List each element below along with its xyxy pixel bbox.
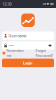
staticText: Remember me <box>6 48 23 58</box>
button[interactable]: Remember me <box>3 48 23 58</box>
staticText: 12:30 <box>2 1 11 7</box>
staticText: Login <box>23 60 33 66</box>
staticText: Username <box>8 33 26 38</box>
staticText: ••••• <box>8 43 13 48</box>
staticText: Forgot Password? <box>35 48 53 58</box>
button[interactable]: Forgot Password? <box>35 48 53 58</box>
button[interactable]: Show password <box>48 44 52 47</box>
button[interactable]: Login <box>2 59 54 67</box>
